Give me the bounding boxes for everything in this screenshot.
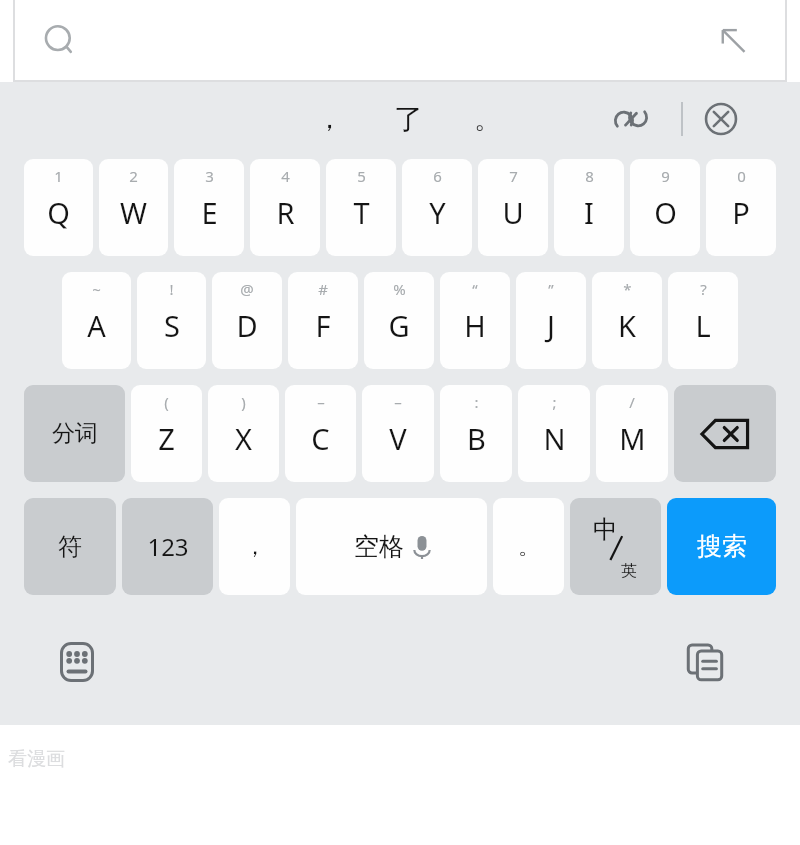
button[interactable]: ) <box>208 385 279 482</box>
staticText: D <box>236 306 258 345</box>
staticText: Z <box>158 419 175 458</box>
staticText: 分词 <box>52 419 98 448</box>
staticText: 5 <box>357 166 366 186</box>
staticText: 。 <box>474 102 501 136</box>
staticText: X <box>235 419 252 458</box>
button[interactable]: 符 <box>24 498 116 595</box>
button[interactable]: Switch keyboard <box>46 631 108 693</box>
staticText: / <box>629 392 635 412</box>
staticText: 0 <box>737 166 746 186</box>
staticText: T <box>353 193 370 232</box>
button[interactable]: Clipboard <box>674 631 736 693</box>
button[interactable]: ? <box>668 272 738 369</box>
staticText: V <box>389 419 407 458</box>
staticText: G <box>388 306 410 345</box>
staticText: 3 <box>205 166 214 186</box>
staticText: 123 <box>147 530 189 563</box>
button[interactable]: / <box>596 385 668 482</box>
staticText: Q <box>47 193 70 232</box>
button[interactable]: 6 <box>402 159 472 256</box>
button[interactable]: 1 <box>24 159 93 256</box>
staticText: ， <box>316 102 343 136</box>
staticText: 符 <box>58 532 82 562</box>
button[interactable]: Backspace <box>674 385 776 482</box>
button[interactable]: ~ <box>62 272 131 369</box>
staticText: ~ <box>92 279 101 299</box>
button[interactable]: Collapse <box>708 16 758 66</box>
staticText: K <box>618 306 636 345</box>
staticText: ， <box>244 533 266 561</box>
staticText: 。 <box>518 533 540 561</box>
staticText: 英 <box>621 561 637 581</box>
staticText: B <box>467 419 486 458</box>
button[interactable]: 2 <box>99 159 168 256</box>
button[interactable]: “ <box>440 272 510 369</box>
staticText: R <box>276 193 295 232</box>
staticText: – <box>394 392 402 412</box>
button[interactable]: 。 <box>493 498 564 595</box>
button[interactable]: – <box>362 385 434 482</box>
button[interactable]: ” <box>516 272 586 369</box>
staticText: 看漫画 <box>8 747 65 771</box>
button[interactable]: 3 <box>174 159 244 256</box>
staticText: ( <box>164 392 169 412</box>
staticText: W <box>120 193 147 232</box>
staticText: I <box>584 193 594 232</box>
staticText: ? <box>700 279 707 299</box>
button[interactable]: 4 <box>250 159 320 256</box>
button[interactable]: 9 <box>630 159 700 256</box>
button[interactable]: 空格 <box>296 498 487 595</box>
button[interactable]: Link <box>604 92 658 146</box>
button[interactable]: – <box>285 385 356 482</box>
staticText: A <box>87 306 106 345</box>
staticText: 1 <box>54 166 63 186</box>
staticText: % <box>393 279 406 299</box>
staticText: @ <box>240 279 254 299</box>
staticText: “ <box>472 279 478 299</box>
button[interactable]: 0 <box>706 159 776 256</box>
button[interactable]: 搜索 <box>667 498 776 595</box>
button[interactable]: 中 <box>570 498 661 595</box>
staticText: C <box>311 419 330 458</box>
button[interactable]: 。 <box>448 89 526 149</box>
staticText: M <box>619 419 646 458</box>
staticText: # <box>318 279 328 299</box>
button[interactable]: # <box>288 272 358 369</box>
staticText: 搜索 <box>697 531 747 562</box>
staticText: P <box>732 193 750 232</box>
staticText: S <box>164 306 180 345</box>
staticText: * <box>623 279 632 299</box>
staticText: ; <box>552 392 557 412</box>
staticText: O <box>654 193 677 232</box>
staticText: N <box>543 419 566 458</box>
staticText: ! <box>169 279 174 299</box>
button[interactable]: 8 <box>554 159 624 256</box>
staticText: 9 <box>661 166 670 186</box>
staticText: U <box>502 193 524 232</box>
staticText: ” <box>548 279 554 299</box>
staticText: 了 <box>394 101 423 138</box>
button[interactable]: 了 <box>368 89 448 149</box>
staticText: J <box>547 306 555 345</box>
staticText: 2 <box>129 166 138 186</box>
button[interactable]: : <box>440 385 512 482</box>
button[interactable]: ( <box>131 385 202 482</box>
staticText: 8 <box>585 166 594 186</box>
button[interactable]: Close keyboard <box>694 92 748 146</box>
button[interactable]: @ <box>212 272 282 369</box>
staticText: H <box>464 306 486 345</box>
button[interactable]: 123 <box>122 498 213 595</box>
button[interactable]: ! <box>137 272 206 369</box>
button[interactable]: * <box>592 272 662 369</box>
button[interactable]: Search <box>34 15 86 67</box>
staticText: F <box>315 306 331 345</box>
button[interactable]: ; <box>518 385 590 482</box>
button[interactable]: % <box>364 272 434 369</box>
button[interactable]: 分词 <box>24 385 125 482</box>
staticText: E <box>201 193 218 232</box>
button[interactable]: 5 <box>326 159 396 256</box>
button[interactable]: 7 <box>478 159 548 256</box>
button[interactable]: ， <box>219 498 290 595</box>
button[interactable]: ， <box>290 89 368 149</box>
staticText: : <box>474 392 479 412</box>
